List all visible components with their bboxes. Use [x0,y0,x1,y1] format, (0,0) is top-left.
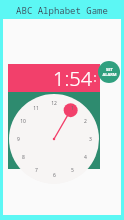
staticText: 7 [35,167,38,174]
button[interactable]: Set alarm [98,61,120,83]
staticText: 1:54 [53,65,93,92]
staticText: ABC Alphabet Game [16,4,108,16]
staticText: 8 [22,154,25,161]
staticText: 6 [53,172,56,179]
staticText: 12 [51,100,57,107]
staticText: 11 [33,105,39,112]
staticText: 4 [84,154,87,161]
staticText: 1 [71,105,74,112]
staticText: 5 [71,167,74,174]
staticText: 9 [17,136,20,143]
staticText: SET ALARM [102,67,117,77]
staticText: 3 [89,136,92,143]
button[interactable]: 1 [9,94,99,184]
staticText: 2 [84,118,87,125]
staticText: 10 [20,118,26,125]
button[interactable]: 1:54 [8,64,100,92]
